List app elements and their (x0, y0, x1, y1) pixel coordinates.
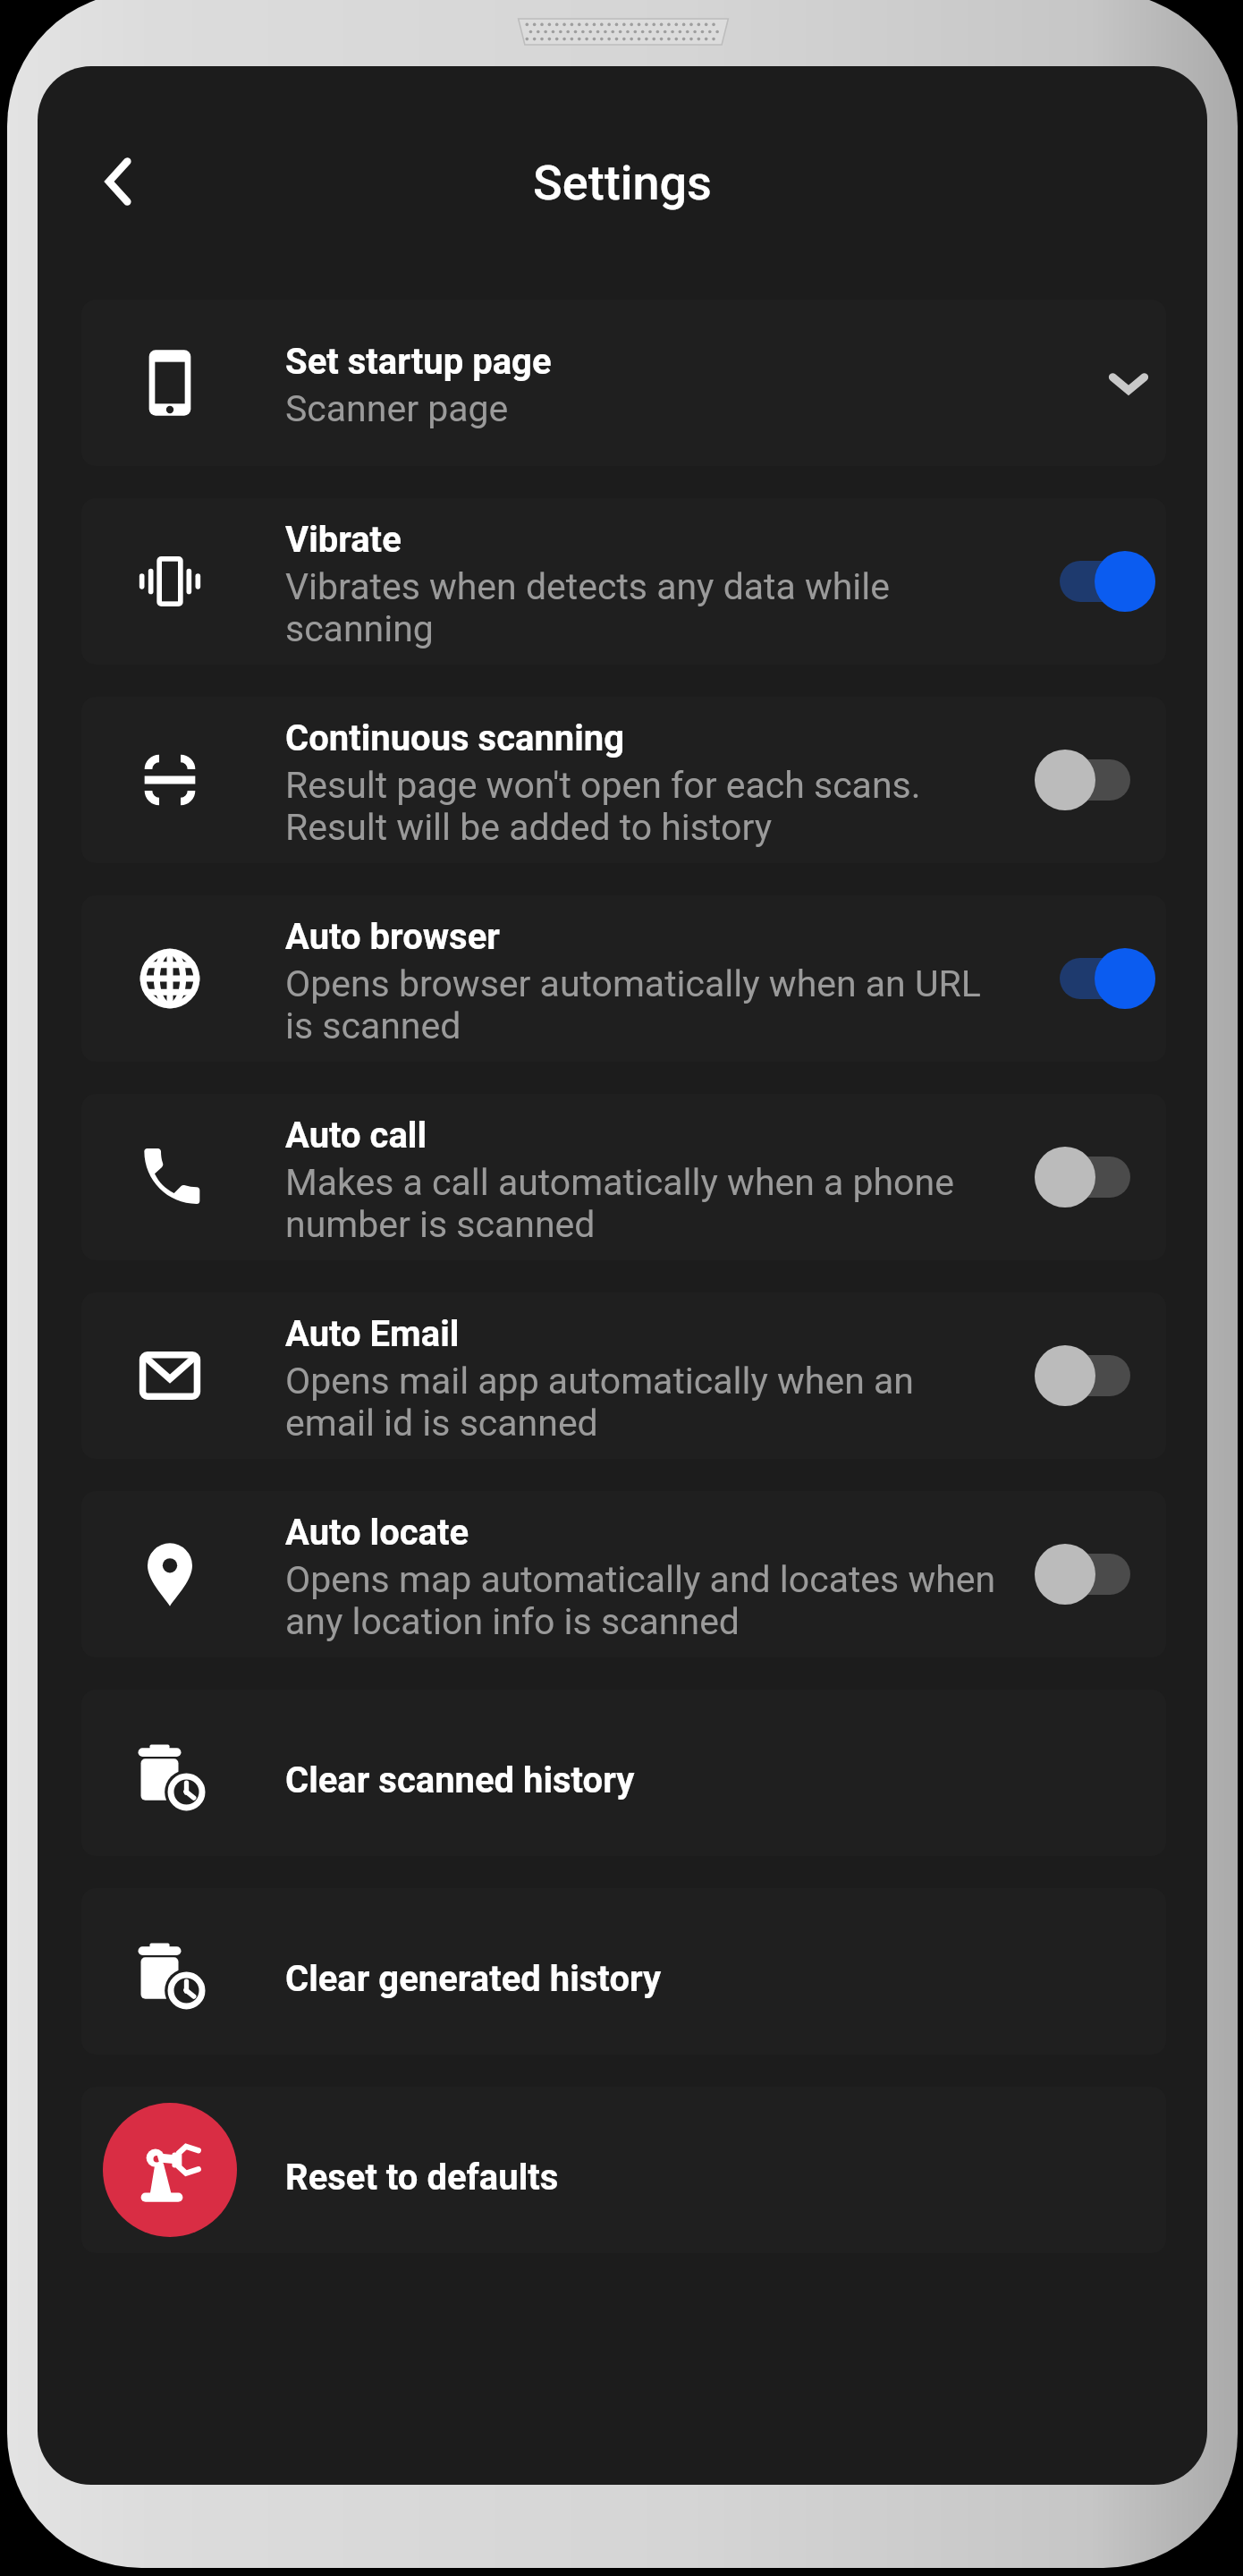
staticText: Auto browser (285, 916, 500, 958)
staticText: Result page won't open for each scans. R… (285, 764, 1010, 849)
button[interactable]: Expand (1091, 345, 1166, 420)
button[interactable]: Toggle off (1035, 1326, 1155, 1425)
staticText: Opens mail app automatically when an ema… (285, 1360, 1010, 1445)
button[interactable]: Continuous scanning (81, 697, 1166, 863)
staticText: Auto call (285, 1114, 427, 1157)
button[interactable]: Toggle on (1035, 532, 1155, 631)
staticText: Auto Email (285, 1313, 460, 1355)
staticText: Vibrates when detects any data while sca… (285, 565, 1010, 650)
button[interactable]: Set startup page (81, 300, 1166, 466)
staticText: Opens browser automatically when an URL … (285, 962, 1010, 1047)
button[interactable]: Toggle on (1035, 929, 1155, 1028)
staticText: Makes a call automatically when a phone … (285, 1161, 1010, 1246)
staticText: Continuous scanning (285, 717, 625, 759)
button[interactable]: Auto Email (81, 1292, 1166, 1459)
button[interactable]: Clear generated history (81, 1888, 1166, 2055)
button[interactable]: Toggle off (1035, 731, 1155, 829)
button[interactable]: Auto browser (81, 895, 1166, 1062)
button[interactable]: Vibrate (81, 498, 1166, 665)
button[interactable]: Clear scanned history (81, 1690, 1166, 1856)
staticText: Settings (533, 155, 712, 211)
staticText: Scanner page (285, 387, 509, 430)
button[interactable]: Back (67, 132, 165, 231)
staticText: Auto locate (285, 1512, 469, 1554)
staticText: Clear generated history (285, 1958, 662, 2000)
staticText: Set startup page (285, 341, 552, 383)
button[interactable]: Auto locate (81, 1491, 1166, 1657)
button[interactable]: Reset to defaults (81, 2087, 1166, 2253)
staticText: Clear scanned history (285, 1759, 635, 1801)
staticText: Vibrate (285, 519, 402, 561)
staticText: Opens map automatically and locates when… (285, 1558, 1010, 1643)
button[interactable]: Toggle off (1035, 1525, 1155, 1623)
staticText: Reset to defaults (285, 2157, 559, 2199)
button[interactable]: Auto call (81, 1094, 1166, 1260)
button[interactable]: Toggle off (1035, 1128, 1155, 1226)
